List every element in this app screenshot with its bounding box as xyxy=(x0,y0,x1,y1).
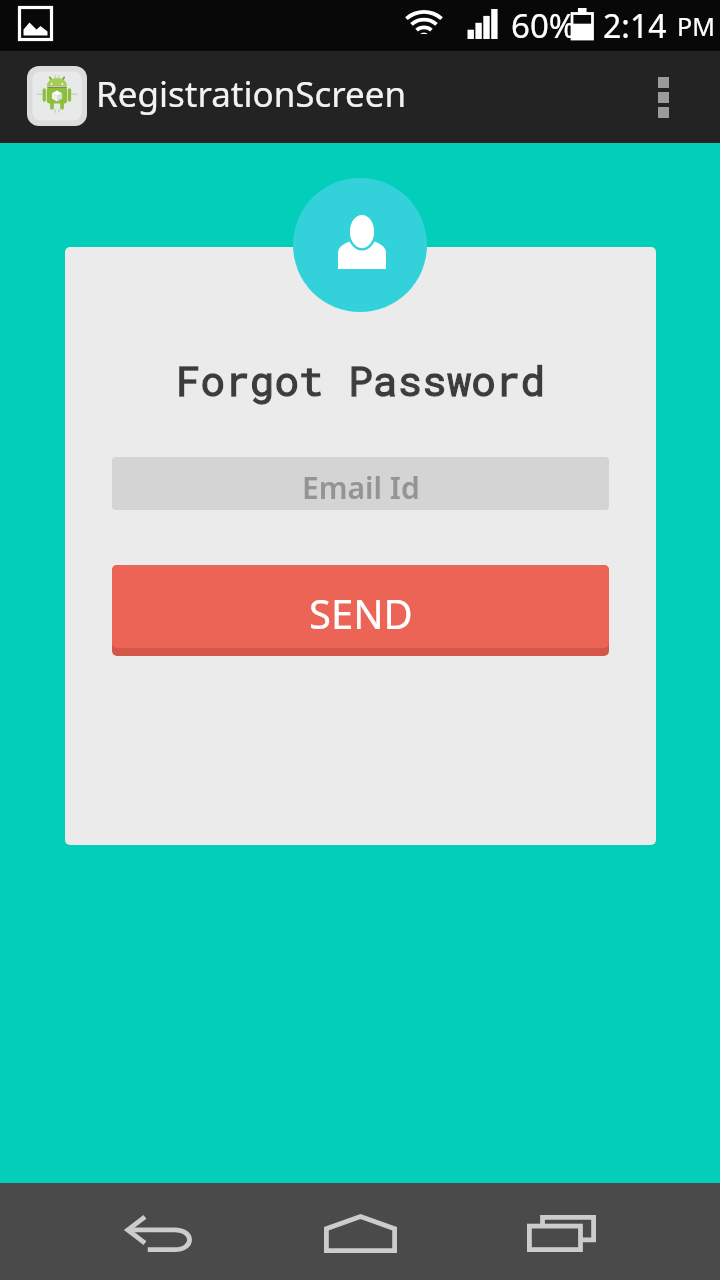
staticText: 60% xyxy=(511,3,577,48)
staticText: 2:14 xyxy=(603,4,667,48)
button[interactable]: Email Id xyxy=(112,457,609,510)
button[interactable]: Back xyxy=(100,1183,220,1280)
button[interactable]: SEND xyxy=(112,565,609,648)
staticText: Forgot Password xyxy=(176,353,546,407)
staticText: PM xyxy=(677,9,715,43)
staticText: Forgot Password xyxy=(176,353,546,407)
staticText: Email Id xyxy=(302,467,420,508)
button[interactable]: Home xyxy=(300,1183,420,1280)
button[interactable]: More options xyxy=(616,53,720,141)
staticText: SEND xyxy=(309,586,413,640)
button[interactable]: Recent apps xyxy=(501,1183,621,1280)
staticText: RegistrationScreen xyxy=(96,70,407,118)
